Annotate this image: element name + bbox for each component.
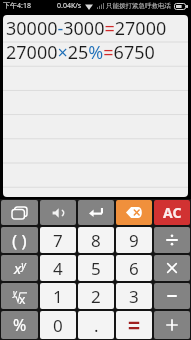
button[interactable] <box>154 311 190 339</box>
button[interactable]: ( ) <box>1 227 38 253</box>
staticText: 0.04K/s <box>57 1 82 11</box>
staticText: x <box>19 291 26 305</box>
staticText: 5 <box>91 257 101 280</box>
button[interactable]: 0 <box>40 311 76 339</box>
staticText: 只能拨打紧急呼救电话 <box>106 2 171 10</box>
staticText: 9 <box>129 229 139 252</box>
staticText: 7 <box>53 229 63 252</box>
button[interactable]: 6 <box>116 255 152 281</box>
button[interactable] <box>116 311 152 339</box>
staticText: 27000×25%=6750 <box>6 40 155 64</box>
staticText: 0 <box>53 314 63 337</box>
staticText: % <box>13 314 27 336</box>
button[interactable]: 9 <box>116 227 152 253</box>
staticText: y <box>13 287 17 298</box>
button[interactable]: 7 <box>40 227 76 253</box>
button[interactable]: xy <box>1 255 38 281</box>
staticText: xy <box>14 258 26 278</box>
button[interactable]: 2 <box>78 283 114 309</box>
button[interactable]: 3 <box>116 283 152 309</box>
staticText: ( ) <box>12 229 27 252</box>
button[interactable]: Backspace <box>116 200 152 225</box>
staticText: 2 <box>91 285 101 308</box>
button[interactable]: 5 <box>78 255 114 281</box>
button[interactable]: AC <box>154 200 190 225</box>
button[interactable]: 1 <box>40 283 76 309</box>
staticText: 8 <box>91 229 101 252</box>
staticText: . <box>94 314 99 337</box>
staticText: 3 <box>129 285 139 308</box>
button[interactable]: 4 <box>40 255 76 281</box>
button[interactable]: 8 <box>78 227 114 253</box>
button[interactable] <box>154 283 190 309</box>
button[interactable] <box>154 227 190 253</box>
button[interactable]: y <box>1 283 38 309</box>
button[interactable]: Copy <box>1 200 38 225</box>
button[interactable] <box>154 255 190 281</box>
button[interactable]: . <box>78 311 114 339</box>
staticText: 30000-3000=27000 <box>6 16 167 40</box>
button[interactable]: % <box>1 311 38 339</box>
button[interactable]: Enter <box>78 200 114 225</box>
button[interactable]: Sound <box>40 200 76 225</box>
staticText: 6 <box>129 257 139 280</box>
staticText: 4 <box>53 257 63 280</box>
staticText: AC <box>163 203 182 222</box>
staticText: 下午4:18 <box>3 1 31 11</box>
staticText: 1 <box>53 285 63 308</box>
